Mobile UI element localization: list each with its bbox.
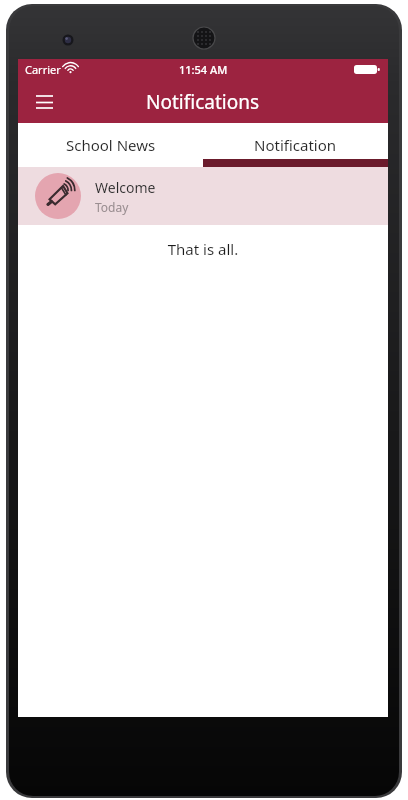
- button[interactable]: Open navigation menu: [28, 86, 60, 118]
- button[interactable]: Welcome: [18, 167, 388, 225]
- button[interactable]: Notification: [203, 123, 388, 167]
- staticText: That is all.: [18, 239, 388, 259]
- staticText: School News: [66, 135, 156, 155]
- staticText: Notifications: [146, 89, 260, 115]
- staticText: Notification: [254, 135, 337, 155]
- staticText: 11:54 AM: [179, 62, 228, 77]
- staticText: Today: [95, 199, 129, 215]
- button[interactable]: School News: [18, 123, 203, 167]
- staticText: Carrier: [25, 62, 61, 77]
- staticText: Welcome: [95, 178, 156, 197]
